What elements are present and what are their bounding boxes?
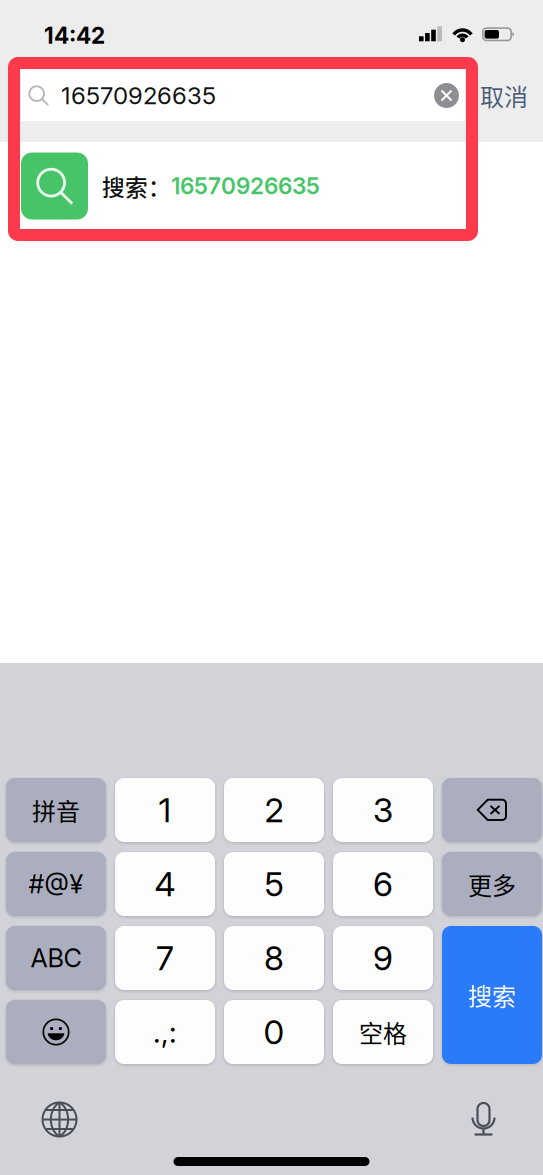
button[interactable]: 拼音 [6,778,106,842]
button[interactable]: 7 [115,926,215,990]
button[interactable]: 更多 [442,852,542,916]
button[interactable]: 2 [224,778,324,842]
staticText: 取消 [480,78,528,113]
button[interactable]: 1 [115,778,215,842]
button[interactable]: Dictate [471,1101,496,1139]
button[interactable]: 3 [333,778,433,842]
staticText: 5 [264,864,283,904]
button[interactable]: 0 [224,1000,324,1064]
button[interactable]: 空格 [333,1000,433,1064]
button[interactable]: 8 [224,926,324,990]
staticText: 0 [263,1012,284,1052]
button[interactable]: .,: [115,1000,215,1064]
staticText: 16570926635 [61,81,216,110]
button[interactable]: #@¥ [6,852,106,916]
staticText: 1 [158,790,171,830]
staticText: 拼音 [32,793,80,827]
button[interactable]: Delete [442,778,542,842]
staticText: .,: [153,1014,177,1050]
staticText: ABC [30,943,81,973]
staticText: 7 [156,938,174,978]
staticText: 3 [373,790,393,830]
staticText: 14:42 [44,22,105,49]
button[interactable]: Emoji [6,1000,106,1064]
staticText: 2 [264,790,283,830]
staticText: 搜索 [468,978,516,1012]
staticText: 空格 [359,1015,407,1049]
staticText: 16570926635 [171,172,320,200]
button[interactable]: 9 [333,926,433,990]
button[interactable]: 4 [115,852,215,916]
button[interactable]: Switch keyboard [41,1101,78,1138]
staticText: 9 [373,938,393,978]
staticText: 6 [373,864,393,904]
button[interactable]: 搜索： [0,142,543,230]
button[interactable]: 搜索 [442,926,542,1064]
staticText: 更多 [468,867,516,901]
button[interactable]: 取消 [465,70,543,121]
staticText: 搜索： [102,170,171,202]
button[interactable]: 5 [224,852,324,916]
button[interactable]: 6 [333,852,433,916]
button[interactable]: ABC [6,926,106,990]
staticText: 4 [154,864,175,904]
staticText: 8 [264,938,284,978]
staticText: #@¥ [28,869,83,899]
